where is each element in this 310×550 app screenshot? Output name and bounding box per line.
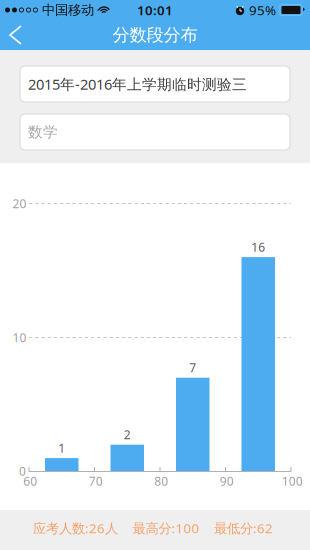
staticText: 中国移动 <box>42 2 94 18</box>
staticText: 2 <box>124 427 131 443</box>
staticText: 20 <box>12 195 26 211</box>
staticText: 应考人数:26人 <box>33 519 118 537</box>
staticText: 10 <box>12 329 26 345</box>
staticText: 最低分:62 <box>214 519 273 537</box>
staticText: 2015年-2016年上学期临时测验三 <box>28 74 247 94</box>
staticText: 95% <box>249 1 276 19</box>
staticText: 1 <box>58 440 65 456</box>
staticText: 7 <box>189 360 196 376</box>
staticText: 60 <box>23 473 37 489</box>
staticText: 最高分:100 <box>132 519 199 537</box>
button[interactable]: Back <box>4 21 34 49</box>
staticText: 0 <box>19 463 26 479</box>
staticText: 80 <box>154 473 168 489</box>
staticText: 90 <box>220 473 234 489</box>
staticText: 10:01 <box>137 1 173 19</box>
button[interactable]: 数学 <box>20 114 290 150</box>
staticText: 数学 <box>28 123 58 141</box>
staticText: 70 <box>89 473 103 489</box>
staticText: 16 <box>251 239 265 255</box>
staticText: 分数段分布 <box>112 24 197 46</box>
button[interactable]: 2015年-2016年上学期临时测验三 <box>20 66 290 102</box>
staticText: 100 <box>282 473 303 489</box>
